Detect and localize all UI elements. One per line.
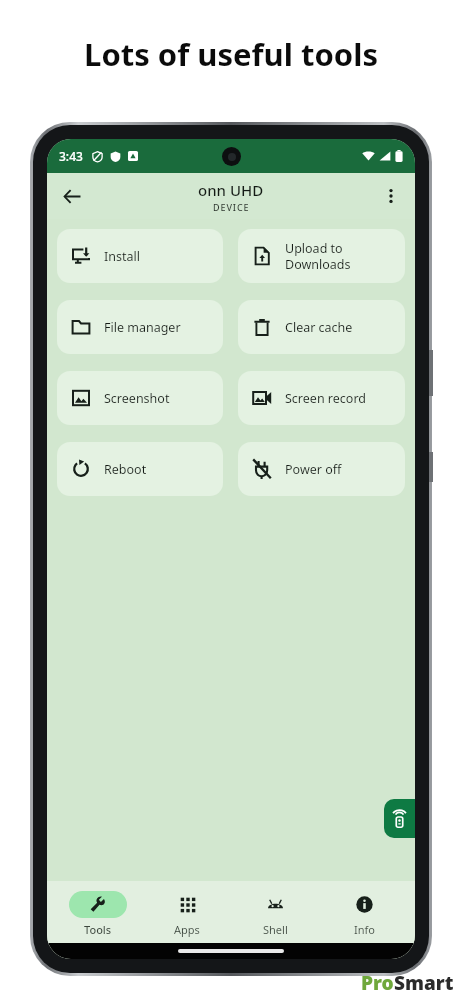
button[interactable]: Reboot <box>57 442 223 496</box>
button[interactable]: Upload to Downloads <box>238 229 405 283</box>
staticText: File manager <box>104 319 181 336</box>
staticText: Upload to Downloads <box>285 240 351 272</box>
staticText: 3:43 <box>59 148 83 164</box>
staticText: Reboot <box>104 461 147 478</box>
button[interactable]: Back <box>53 177 91 215</box>
staticText: Clear cache <box>285 319 353 336</box>
staticText: Screenshot <box>104 390 170 407</box>
button[interactable]: Apps <box>150 889 224 939</box>
button[interactable]: Power off <box>238 442 405 496</box>
staticText: Lots of useful tools <box>84 33 378 75</box>
staticText: Tools <box>84 922 112 937</box>
staticText: Shell <box>263 922 288 937</box>
staticText: onn UHD <box>198 180 264 200</box>
button[interactable]: Info <box>327 889 401 939</box>
button[interactable]: Remote control <box>384 799 415 838</box>
staticText: Screen record <box>285 390 366 407</box>
staticText: Power off <box>285 461 342 478</box>
staticText: DEVICE <box>213 201 250 213</box>
button[interactable]: Tools <box>61 889 135 939</box>
staticText: Smart <box>394 970 454 996</box>
button[interactable]: Clear cache <box>238 300 405 354</box>
button[interactable]: File manager <box>57 300 223 354</box>
button[interactable]: Install <box>57 229 223 283</box>
staticText: Install <box>104 248 140 265</box>
staticText: Info <box>354 922 375 937</box>
button[interactable]: Shell <box>238 889 312 939</box>
button[interactable]: Screen record <box>238 371 405 425</box>
button[interactable]: More options <box>373 178 409 214</box>
staticText: Pro <box>361 970 394 996</box>
staticText: Apps <box>174 922 200 937</box>
button[interactable]: Screenshot <box>57 371 223 425</box>
